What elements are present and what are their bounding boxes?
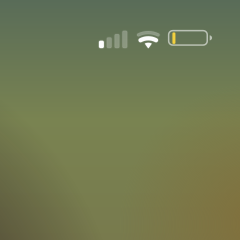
button[interactable]: Cellular signal, 1 of 4 bars (0, 0, 240, 60)
button[interactable]: Wi-Fi connected (0, 0, 240, 60)
button[interactable]: Battery low (0, 0, 240, 60)
